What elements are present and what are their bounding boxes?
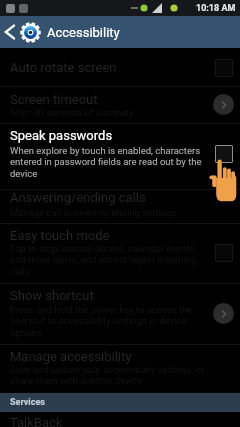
- staticText: When explore by touch is enabled, charac…: [10, 145, 201, 156]
- staticText: Services: [10, 397, 45, 408]
- staticText: TalkBack: [10, 415, 63, 427]
- staticText: Accessibility: [47, 25, 120, 40]
- button[interactable]: [0, 284, 240, 338]
- staticText: device: [10, 168, 38, 179]
- button[interactable]: Show shortcut settings: [213, 303, 234, 324]
- button[interactable]: [0, 56, 240, 78]
- staticText: share them with another device: [10, 375, 143, 386]
- button[interactable]: Toggle Easy touch mode: [215, 244, 233, 262]
- button[interactable]: Toggle Speak passwords: [215, 145, 233, 163]
- button[interactable]: Toggle Auto rotate screen: [215, 59, 233, 77]
- staticText: Answering/ending calls: [10, 190, 146, 205]
- button[interactable]: Navigate up: [0, 16, 20, 48]
- staticText: Press and hold the power key to access t…: [10, 304, 193, 315]
- staticText: Manage call answering/ending settings: [10, 207, 177, 218]
- staticText: Show shortcut: [10, 288, 94, 303]
- staticText: Manage accessibility: [10, 349, 132, 364]
- staticText: Speak passwords: [10, 128, 113, 143]
- staticText: After 30 seconds of inactivity: [10, 107, 134, 118]
- button[interactable]: [0, 124, 240, 178]
- button[interactable]: Services: [0, 393, 240, 412]
- staticText: calls: [10, 266, 30, 277]
- staticText: entered in password fields are read out …: [10, 156, 202, 167]
- staticText: Screen timeout: [10, 92, 98, 107]
- staticText: Easy touch mode: [10, 228, 110, 243]
- staticText: Tap to stop/snooze alarms, calendar even…: [10, 243, 197, 254]
- staticText: and timer alerts, and accept/reject inco…: [10, 254, 197, 265]
- button[interactable]: [0, 88, 240, 118]
- staticText: options: [10, 327, 42, 338]
- button[interactable]: [0, 224, 240, 278]
- button[interactable]: [0, 345, 240, 387]
- staticText: Save and update your accessibility setti…: [10, 364, 205, 375]
- staticText: shortcut to accessibility settings in de…: [10, 315, 187, 326]
- button[interactable]: Screen timeout settings: [213, 94, 234, 115]
- button[interactable]: [0, 186, 240, 216]
- staticText: Auto rotate screen: [10, 60, 117, 75]
- staticText: 10:18 AM: [196, 3, 236, 14]
